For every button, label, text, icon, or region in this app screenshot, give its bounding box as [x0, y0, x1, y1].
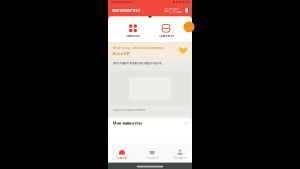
staticText: Всё в VIP	[112, 51, 129, 56]
staticText: Мои кабинеты	[112, 120, 141, 126]
staticText: и область	[169, 10, 182, 14]
button[interactable]: Мои чеки, личный менеджер	[108, 42, 192, 59]
button[interactable]: Москва	[165, 7, 185, 14]
staticText: Главная	[116, 156, 127, 160]
staticText: Горячие предложения	[112, 108, 145, 112]
staticText: Категории	[126, 34, 140, 38]
staticText: Сравнение	[158, 34, 173, 38]
staticText: Профиль	[173, 156, 186, 160]
button[interactable]: Мои кабинеты	[108, 118, 192, 129]
button[interactable]: Корзина	[136, 147, 168, 160]
button[interactable]: Assistant	[183, 21, 192, 32]
button[interactable]: Категории	[108, 23, 158, 39]
staticText: Москва	[169, 7, 178, 10]
button[interactable]: Notifications	[185, 8, 188, 12]
staticText: Используйте товарную рассрочку на…	[112, 61, 162, 65]
button[interactable]: Профиль	[168, 147, 192, 160]
button[interactable]: Сравнение	[158, 23, 174, 39]
button[interactable]: Главная	[108, 147, 136, 160]
staticText: МЕГАМАРКЕТ	[112, 8, 140, 13]
staticText: Мои чеки, личный менеджер	[112, 45, 163, 50]
staticText: Корзина	[146, 156, 158, 160]
